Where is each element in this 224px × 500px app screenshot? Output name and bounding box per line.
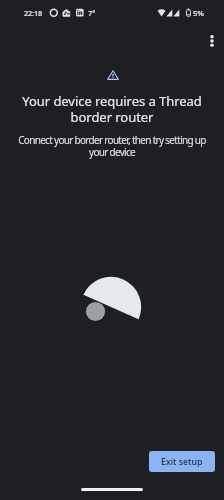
- staticText: 5%: [193, 8, 204, 19]
- staticText: 22:18: [24, 8, 42, 18]
- button[interactable]: Exit setup: [149, 451, 215, 472]
- staticText: 7°: [88, 8, 96, 18]
- staticText: Your device requires a Thread border rou…: [9, 92, 215, 126]
- staticText: Connect your border router, then try set…: [15, 133, 209, 159]
- button[interactable]: More options: [200, 29, 224, 53]
- staticText: Exit setup: [161, 456, 203, 468]
